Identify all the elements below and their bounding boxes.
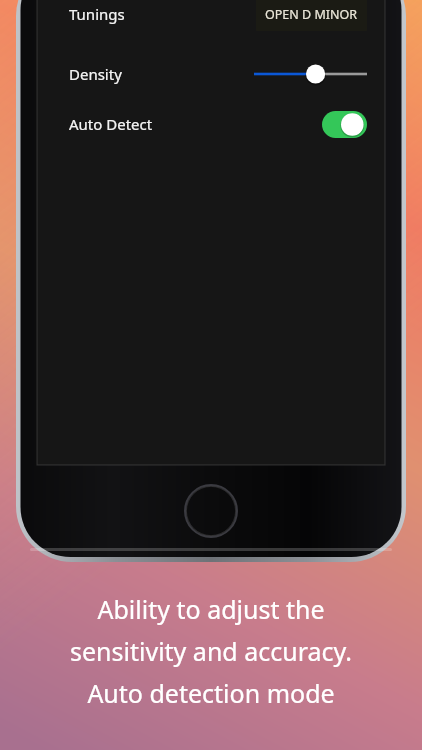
button[interactable]: Auto Detect toggle, on [322, 111, 367, 138]
staticText: Density [69, 64, 122, 84]
staticText: sensitivity and accuracy. [70, 634, 352, 668]
staticText: Tunings [69, 4, 125, 24]
staticText: Auto Detect [69, 114, 153, 134]
button[interactable]: Density slider [254, 59, 367, 89]
button[interactable]: Auto Detect [37, 102, 385, 146]
staticText: Auto detection mode [87, 676, 335, 710]
staticText: OPEN D MINOR [265, 6, 358, 23]
button[interactable]: Tunings [37, 0, 385, 38]
button[interactable]: Density [37, 52, 385, 96]
staticText: Ability to adjust the [97, 592, 325, 626]
button[interactable]: OPEN D MINOR [256, 0, 367, 31]
